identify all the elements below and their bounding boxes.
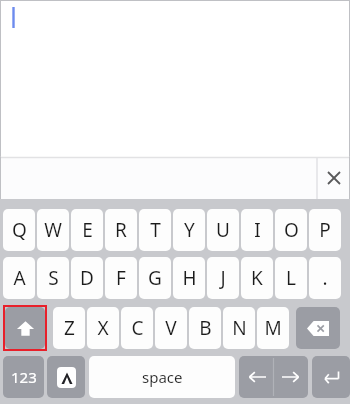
staticText: L [286, 265, 296, 291]
button[interactable]: B [189, 307, 221, 349]
button[interactable]: I [241, 209, 273, 251]
staticText: 123 [11, 367, 37, 387]
button[interactable]: M [257, 307, 289, 349]
staticText: D [80, 265, 94, 291]
button[interactable]: K [241, 257, 273, 299]
button[interactable]: O [275, 209, 307, 251]
button[interactable]: W [37, 209, 69, 251]
button[interactable] [0, 0, 350, 157]
staticText: G [148, 265, 162, 291]
button[interactable]: R [105, 209, 137, 251]
staticText: V [165, 315, 177, 341]
staticText: C [131, 315, 144, 341]
button[interactable]: Move cursor right [274, 356, 308, 398]
button[interactable]: J [207, 257, 239, 299]
staticText: T [150, 217, 161, 243]
button[interactable]: Backspace [296, 307, 340, 349]
staticText: space [142, 367, 183, 387]
button[interactable]: E [71, 209, 103, 251]
button[interactable]: S [37, 257, 69, 299]
button[interactable]: Q [3, 209, 35, 251]
staticText: . [322, 265, 328, 291]
staticText: X [97, 315, 109, 341]
button[interactable]: L [275, 257, 307, 299]
staticText: B [199, 315, 212, 341]
button[interactable]: Z [53, 307, 85, 349]
button[interactable]: F [105, 257, 137, 299]
staticText: P [319, 217, 331, 243]
button[interactable]: X [87, 307, 119, 349]
button[interactable]: . [309, 257, 341, 299]
staticText: N [232, 315, 247, 341]
button[interactable]: U [207, 209, 239, 251]
staticText: Z [64, 315, 75, 341]
staticText: U [216, 217, 230, 243]
staticText: J [220, 265, 226, 291]
button[interactable]: D [71, 257, 103, 299]
staticText: H [182, 265, 197, 291]
button[interactable]: P [309, 209, 341, 251]
staticText: M [264, 315, 282, 341]
staticText: A [13, 265, 26, 291]
button[interactable]: G [139, 257, 171, 299]
button[interactable]: V [155, 307, 187, 349]
staticText: Y [184, 217, 195, 243]
button[interactable]: H [173, 257, 205, 299]
button[interactable]: Clear text [317, 157, 350, 199]
button[interactable]: Shift [5, 307, 45, 349]
button[interactable]: space [89, 356, 235, 398]
staticText: W [44, 217, 62, 243]
button[interactable]: C [121, 307, 153, 349]
button[interactable]: Y [173, 209, 205, 251]
button[interactable]: Switch keyboard [47, 356, 85, 398]
staticText: R [115, 217, 127, 243]
button[interactable]: Return [312, 356, 350, 398]
staticText: S [48, 265, 59, 291]
button[interactable]: 123 [3, 356, 44, 398]
button[interactable]: T [139, 209, 171, 251]
staticText: E [82, 217, 93, 243]
button[interactable]: A [3, 257, 35, 299]
staticText: O [284, 217, 299, 243]
staticText: K [251, 265, 263, 291]
staticText: I [254, 217, 261, 243]
button[interactable]: Move cursor left [239, 356, 274, 398]
staticText: Q [12, 217, 27, 243]
staticText: F [116, 265, 126, 291]
button[interactable]: N [223, 307, 255, 349]
